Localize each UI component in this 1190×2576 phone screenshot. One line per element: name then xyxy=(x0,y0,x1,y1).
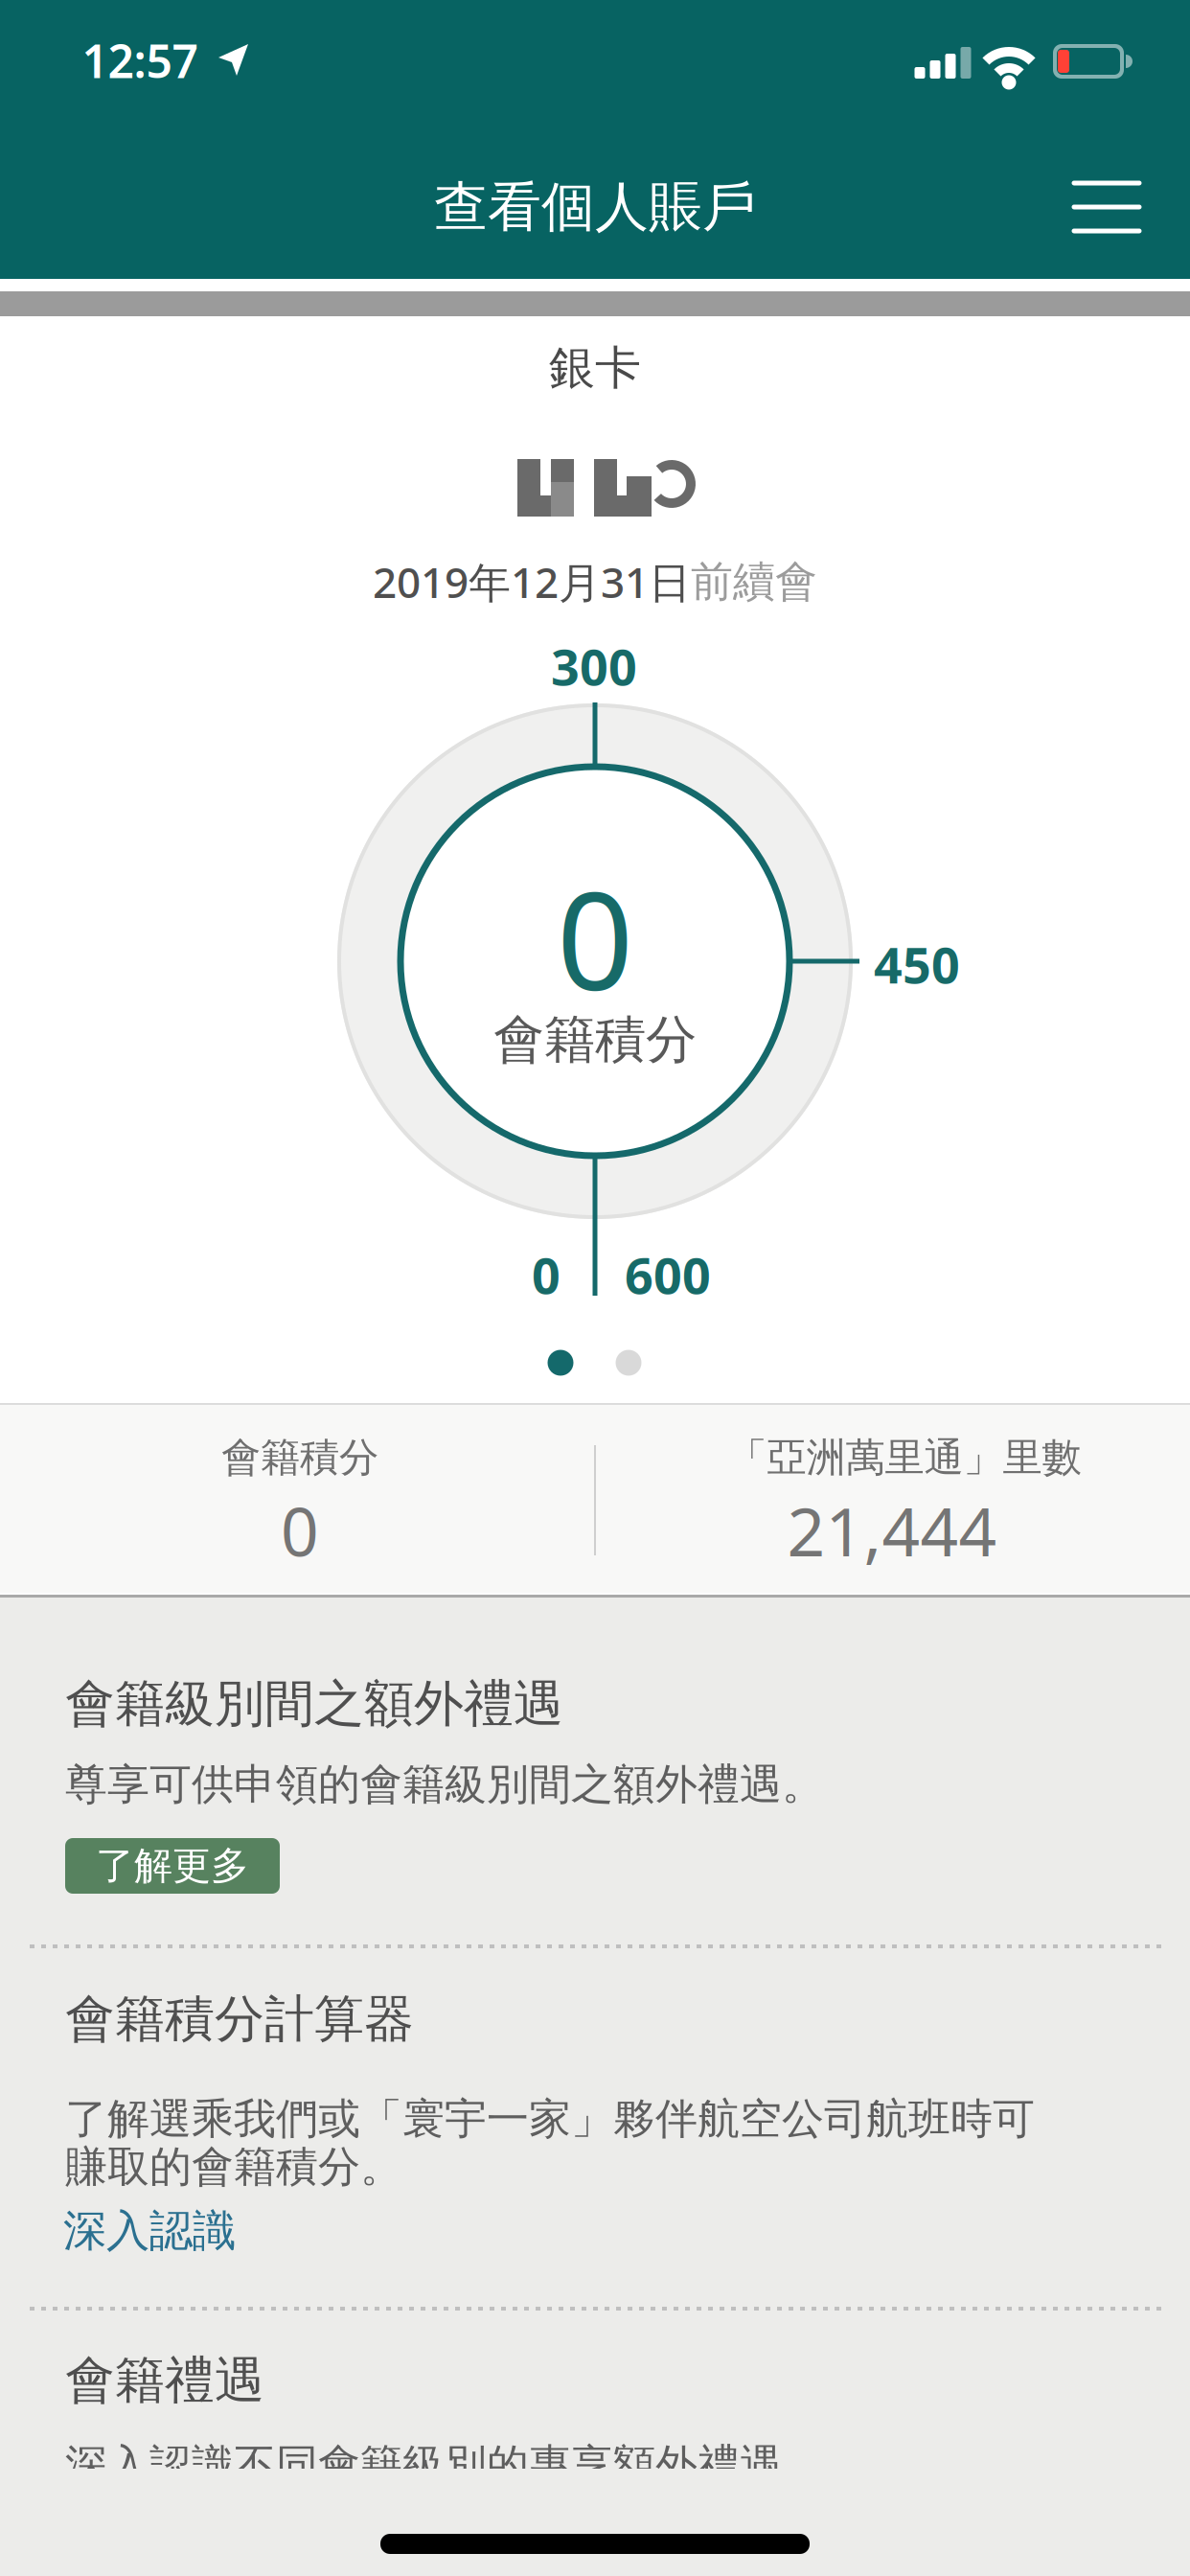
staticText: 「亞洲萬里通」里數 xyxy=(728,1433,1081,1482)
staticText: 600 xyxy=(625,1242,711,1308)
staticText: 會籍積分計算器 xyxy=(65,1989,414,2050)
staticText: 0 xyxy=(557,849,633,1027)
staticText: 了解選乘我們或「寰宇一家」夥伴航空公司航班時可 xyxy=(65,2093,1035,2145)
staticText: 銀卡 xyxy=(549,340,641,396)
staticText: 深入認識 xyxy=(63,2204,236,2258)
staticText: 12:57 xyxy=(82,30,198,91)
staticText: 查看個人賬戶 xyxy=(434,174,756,240)
staticText: 了解更多 xyxy=(96,1842,249,1889)
staticText: 深入認識不同會籍級別的專享額外禮遇 xyxy=(65,2439,782,2491)
staticText: 300 xyxy=(551,633,637,699)
button[interactable]: 了解更多 xyxy=(65,1838,280,1894)
staticText: 會籍禮遇 xyxy=(65,2350,264,2411)
staticText: 會籍積分 xyxy=(221,1433,378,1482)
button[interactable]: Menu xyxy=(1054,154,1159,260)
staticText: 0 xyxy=(281,1486,319,1575)
staticText: 會籍積分 xyxy=(493,1008,697,1071)
staticText: 前續會 xyxy=(691,556,817,608)
staticText: 會籍級別間之額外禮遇 xyxy=(65,1673,563,1735)
staticText: 2019年12月31日 xyxy=(373,554,691,610)
staticText: 450 xyxy=(874,931,960,997)
staticText: 賺取的會籍積分。 xyxy=(65,2141,402,2193)
button[interactable]: 深入認識 xyxy=(63,2204,236,2258)
staticText: 尊享可供申領的會籍級別間之額外禮遇。 xyxy=(65,1759,824,1810)
staticText: 0 xyxy=(532,1242,561,1308)
staticText: 21,444 xyxy=(787,1486,997,1575)
